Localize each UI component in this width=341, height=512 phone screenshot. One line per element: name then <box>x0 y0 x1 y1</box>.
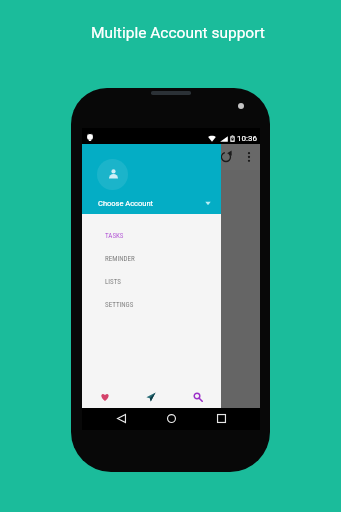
staticText: REMINDER <box>105 255 135 263</box>
button[interactable]: Choose Account <box>82 194 221 213</box>
staticText: LISTS <box>105 278 121 286</box>
button[interactable]: SETTINGS <box>82 293 221 316</box>
staticText: Multiple Account support <box>91 24 265 42</box>
button[interactable]: Back <box>117 407 126 429</box>
button[interactable]: Send <box>128 389 174 405</box>
button[interactable]: Favorites <box>82 389 128 405</box>
button[interactable]: Refresh <box>218 149 234 165</box>
button[interactable]: Home <box>167 407 176 429</box>
staticText: 10:36 <box>237 134 257 143</box>
button[interactable]: Search <box>174 389 221 405</box>
staticText: Choose Account <box>98 199 154 208</box>
staticText: TASKS <box>105 232 124 240</box>
button[interactable]: REMINDER <box>82 247 221 270</box>
staticText: SETTINGS <box>105 301 134 309</box>
button[interactable]: TASKS <box>82 224 221 247</box>
button[interactable]: More options <box>241 149 257 165</box>
button[interactable]: Recents <box>217 407 226 429</box>
button[interactable]: LISTS <box>82 270 221 293</box>
